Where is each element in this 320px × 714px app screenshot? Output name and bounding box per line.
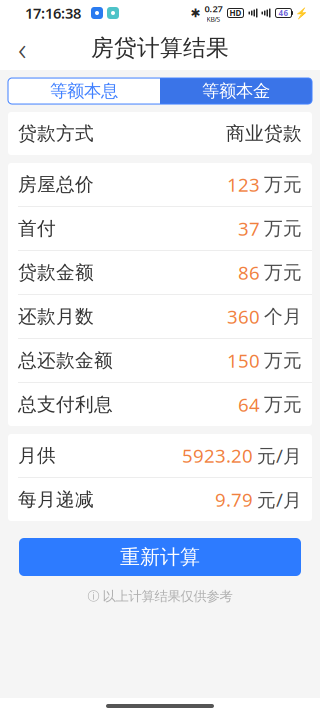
staticText: 等额本息 — [50, 80, 118, 102]
staticText: 86 — [238, 260, 260, 285]
staticText: KB/S — [206, 15, 220, 24]
staticText: 360 — [227, 304, 260, 329]
staticText: 5923.20 — [182, 443, 253, 468]
staticText: 123 — [227, 172, 260, 197]
staticText: ⓘ — [87, 589, 99, 603]
staticText: 17:16:38 — [25, 3, 81, 23]
staticText: 总支付利息 — [18, 393, 113, 416]
staticText: 每月递减 — [18, 488, 94, 511]
button[interactable]: 等额本金 — [160, 78, 312, 104]
staticText: ‹ — [18, 27, 26, 69]
staticText: 首付 — [18, 217, 56, 240]
staticText: 万元 — [264, 393, 302, 416]
staticText: 贷款方式 — [18, 122, 94, 145]
staticText: 0.27 — [204, 2, 222, 15]
staticText: HD — [229, 8, 241, 18]
staticText: 总还款金额 — [18, 349, 113, 372]
staticText: 个月 — [264, 305, 302, 328]
staticText: 贷款金额 — [18, 261, 94, 284]
staticText: 46 — [278, 8, 288, 18]
staticText: 房贷计算结果 — [91, 34, 229, 62]
button[interactable]: 重新计算 — [19, 538, 301, 576]
staticText: 元/月 — [257, 487, 302, 512]
button[interactable]: 等额本息 — [8, 78, 160, 104]
staticText: 万元 — [264, 217, 302, 240]
staticText: ⚡ — [295, 7, 308, 19]
staticText: 万元 — [264, 349, 302, 372]
staticText: 9.79 — [215, 487, 253, 512]
staticText: 等额本金 — [202, 80, 270, 102]
staticText: 150 — [227, 348, 260, 373]
staticText: 月供 — [18, 444, 56, 467]
staticText: 商业贷款 — [226, 122, 302, 145]
staticText: 以上计算结果仅供参考 — [102, 588, 232, 604]
staticText: ✱ — [190, 6, 200, 20]
staticText: 重新计算 — [120, 545, 200, 569]
staticText: 37 — [238, 216, 260, 241]
staticText: 房屋总价 — [18, 173, 94, 196]
staticText: 万元 — [264, 261, 302, 284]
staticText: 还款月数 — [18, 305, 94, 328]
staticText: 万元 — [264, 173, 302, 196]
staticText: 64 — [238, 392, 260, 417]
staticText: 元/月 — [257, 443, 302, 468]
button[interactable]: 返回 — [0, 26, 44, 70]
